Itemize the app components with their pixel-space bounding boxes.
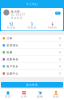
staticText: 收藏 [7,51,13,54]
button[interactable]: 分类 [16,89,32,100]
staticText: 分类 [21,95,27,98]
button[interactable]: 优惠券包 [0,56,64,63]
button[interactable]: 签到 [55,11,61,15]
button[interactable]: 购物 [32,89,48,100]
staticText: 3 [31,23,33,26]
button[interactable]: 收藏 [0,49,64,56]
staticText: 张小明 [11,10,20,13]
staticText: 退出登录 [26,83,38,86]
button[interactable]: 设置中心 [0,70,64,77]
button[interactable]: 我的 [48,89,64,100]
staticText: ID: 88291 [11,13,26,16]
staticText: 6 [52,23,54,26]
staticText: 订单 [7,37,13,40]
staticText: 待评价 [48,26,57,29]
staticText: 首页 [5,95,11,98]
button[interactable]: 首页 [0,89,16,100]
button[interactable]: 退出登录 [1,82,63,88]
staticText: 设置中心 [7,72,19,75]
staticText: 购物 [37,95,43,98]
staticText: 我的 [53,95,59,98]
staticText: 待收货 [27,26,36,29]
staticText: 优惠券包 [7,58,19,61]
staticText: 待付款 [7,26,16,29]
button[interactable]: 账户安全 [0,63,64,70]
staticText: 收货地址 [7,44,19,47]
button[interactable]: 收货地址 [0,42,64,49]
staticText: 黄金会员 [11,16,23,19]
staticText: 签到 [56,10,59,16]
staticText: 12 [9,23,13,26]
button[interactable]: 订单 [0,35,64,42]
button[interactable]: 3 [22,23,42,29]
button[interactable]: 6 [42,23,63,29]
button[interactable]: 12 [1,23,22,29]
staticText: 个人中心 [26,2,38,6]
staticText: 账户安全 [7,65,19,68]
